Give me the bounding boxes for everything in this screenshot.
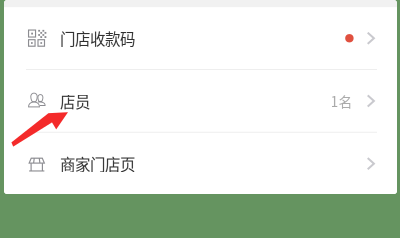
staticText: 店员	[60, 90, 90, 112]
staticText: 1名	[331, 91, 353, 111]
button[interactable]: 门店收款码	[4, 7, 397, 69]
button[interactable]: 商家门店页	[4, 133, 397, 194]
staticText: 门店收款码	[60, 27, 135, 49]
staticText: 商家门店页	[60, 152, 135, 175]
button[interactable]: 店员	[4, 70, 397, 132]
